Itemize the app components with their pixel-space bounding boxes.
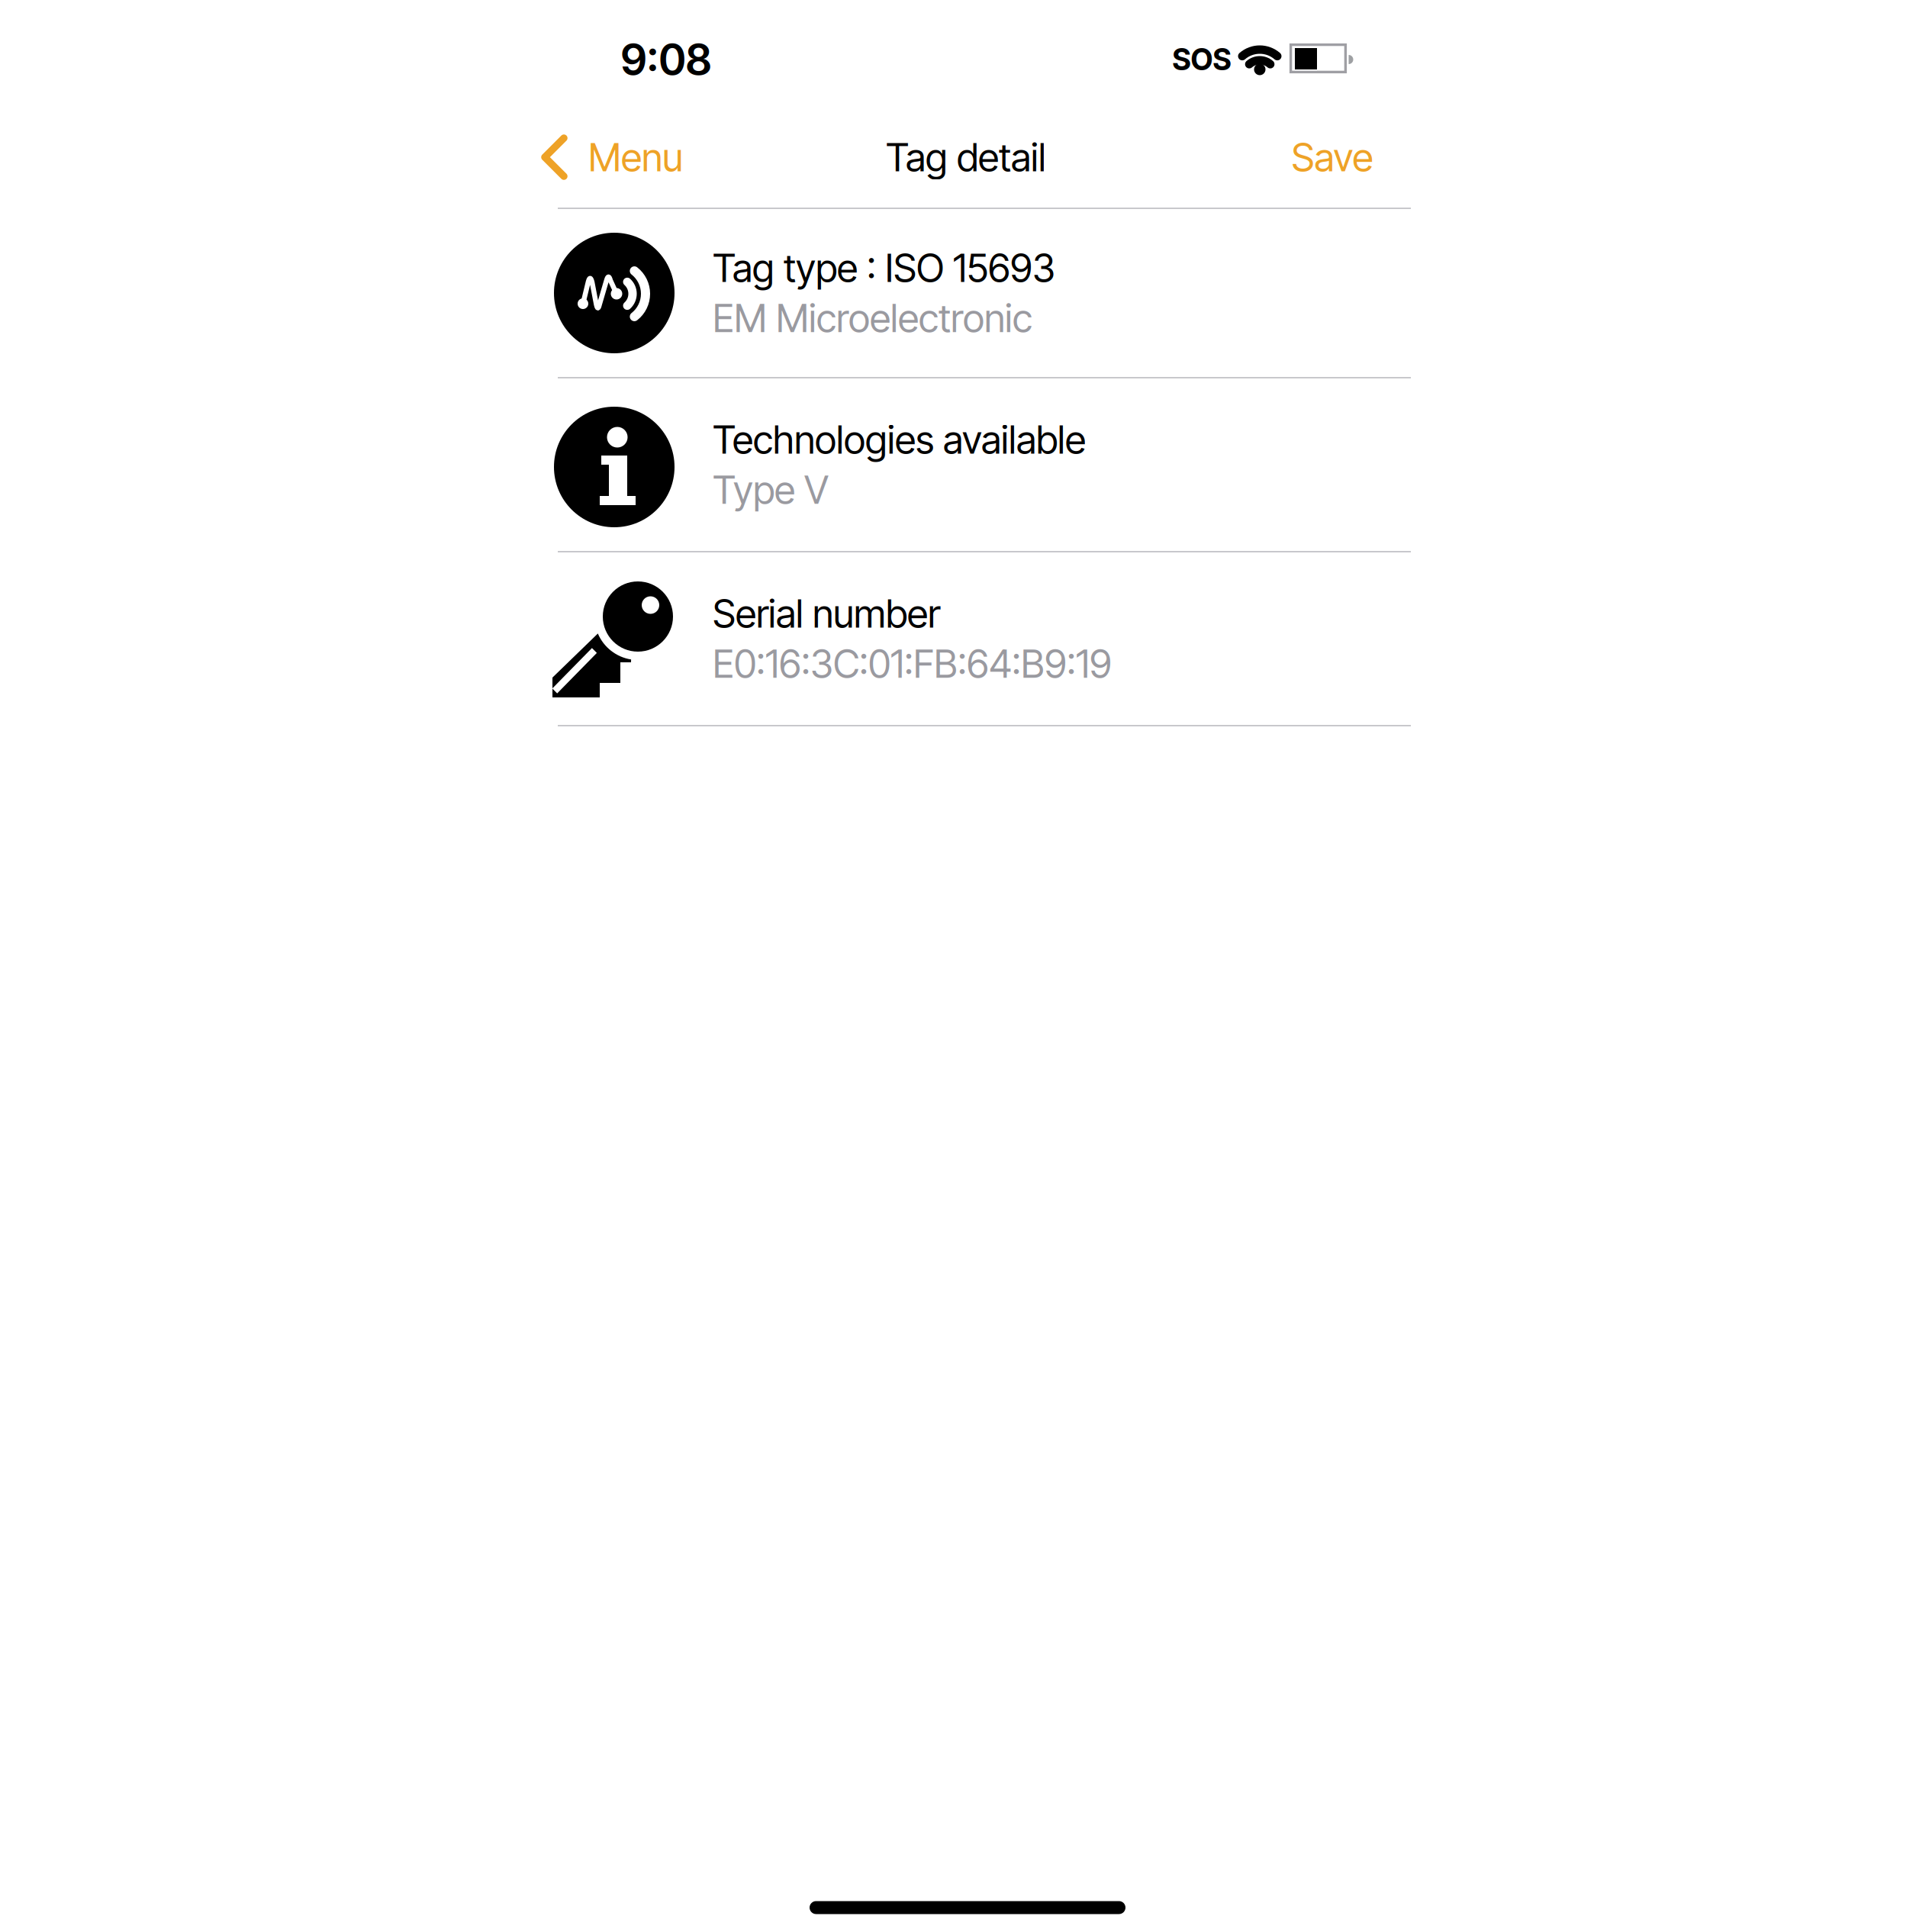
button[interactable]: Save	[1291, 134, 1373, 180]
staticText: 9:08	[621, 34, 712, 85]
button[interactable]: Technologies available	[520, 378, 1412, 552]
button[interactable]: Serial number	[520, 552, 1412, 726]
button[interactable]: Tag type : ISO 15693	[520, 208, 1412, 378]
staticText: Type V	[713, 467, 829, 513]
staticText: Technologies available	[713, 417, 1086, 462]
staticText: E0:16:3C:01:FB:64:B9:19	[713, 641, 1112, 687]
staticText: Serial number	[713, 591, 940, 636]
button[interactable]: Menu	[541, 134, 683, 180]
staticText: Tag detail	[886, 134, 1046, 180]
staticText: Save	[1291, 134, 1373, 180]
staticText: Menu	[588, 134, 683, 180]
staticText: SOS	[1172, 42, 1231, 77]
staticText: Tag type : ISO 15693	[713, 245, 1055, 291]
staticText: EM Microelectronic	[713, 295, 1032, 341]
